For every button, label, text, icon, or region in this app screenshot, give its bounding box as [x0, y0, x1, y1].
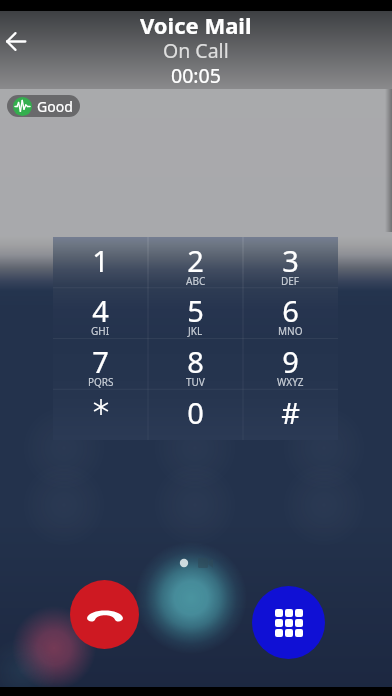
staticText: 1: [92, 241, 109, 280]
staticText: TUV: [186, 375, 205, 389]
button[interactable]: Back: [0, 21, 35, 61]
staticText: PQRS: [88, 375, 114, 389]
staticText: Voice Mail: [140, 10, 252, 40]
staticText: 4: [92, 291, 109, 330]
button[interactable]: 3: [243, 237, 338, 287]
staticText: 2: [187, 241, 204, 280]
button[interactable]: Show keypad: [252, 586, 325, 659]
staticText: GHI: [91, 324, 110, 338]
staticText: 9: [282, 342, 299, 381]
staticText: 00:05: [171, 62, 221, 83]
staticText: DEF: [281, 274, 300, 288]
button[interactable]: 4: [53, 287, 148, 338]
staticText: 3: [282, 241, 299, 280]
staticText: JKL: [188, 324, 203, 338]
staticText: 5: [187, 291, 204, 330]
staticText: Good: [37, 97, 73, 116]
button[interactable]: [53, 389, 148, 440]
staticText: 8: [187, 342, 204, 381]
button[interactable]: 6: [243, 287, 338, 338]
staticText: ABC: [186, 274, 206, 288]
staticText: 0: [187, 393, 204, 432]
button[interactable]: 9: [243, 338, 338, 389]
button[interactable]: 8: [148, 338, 243, 389]
button[interactable]: End call: [70, 580, 139, 649]
staticText: 7: [92, 342, 109, 381]
staticText: 6: [282, 291, 299, 330]
staticText: MNO: [278, 324, 303, 338]
button[interactable]: 7: [53, 338, 148, 389]
staticText: WXYZ: [277, 375, 304, 389]
button[interactable]: 5: [148, 287, 243, 338]
button[interactable]: #: [243, 389, 338, 440]
staticText: #: [281, 393, 300, 432]
button[interactable]: 1: [53, 237, 148, 287]
staticText: On Call: [163, 37, 229, 64]
button[interactable]: Good: [7, 95, 80, 117]
button[interactable]: 2: [148, 237, 243, 287]
button[interactable]: 0: [148, 389, 243, 440]
